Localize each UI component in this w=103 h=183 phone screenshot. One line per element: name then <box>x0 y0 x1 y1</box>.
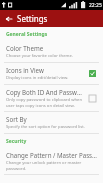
staticText: Choose your favorite color theme. <box>6 53 73 59</box>
staticText: Change Pattern / Master Password <box>6 151 98 159</box>
staticText: Only copy password to clipboard when use… <box>6 97 82 108</box>
staticText: Copy Both ID And Password <box>6 88 84 96</box>
staticText: 22:25 <box>89 2 102 9</box>
staticText: Color Theme <box>6 44 44 52</box>
button[interactable]: Back <box>0 10 17 27</box>
button[interactable]: Toggle <box>87 93 98 104</box>
staticText: Sort By <box>6 115 27 123</box>
button[interactable]: Toggle <box>87 68 98 79</box>
button[interactable]: Icons in View <box>0 63 103 84</box>
staticText: Icons in View <box>6 66 44 74</box>
staticText: Change your unlock pattern or master pas… <box>6 160 82 171</box>
staticText: General Settings <box>6 31 48 38</box>
staticText: Security <box>6 138 27 145</box>
button[interactable]: Sort By <box>0 112 103 133</box>
staticText: Specify the sort option for password lis… <box>6 124 85 130</box>
button[interactable]: Copy Both ID And Password <box>0 85 103 111</box>
staticText: Settings <box>17 13 48 24</box>
button[interactable]: Color Theme <box>0 41 103 62</box>
button[interactable]: Change Pattern / Master Password <box>0 148 103 174</box>
staticText: Display icons in edit/detail view. <box>6 75 69 81</box>
